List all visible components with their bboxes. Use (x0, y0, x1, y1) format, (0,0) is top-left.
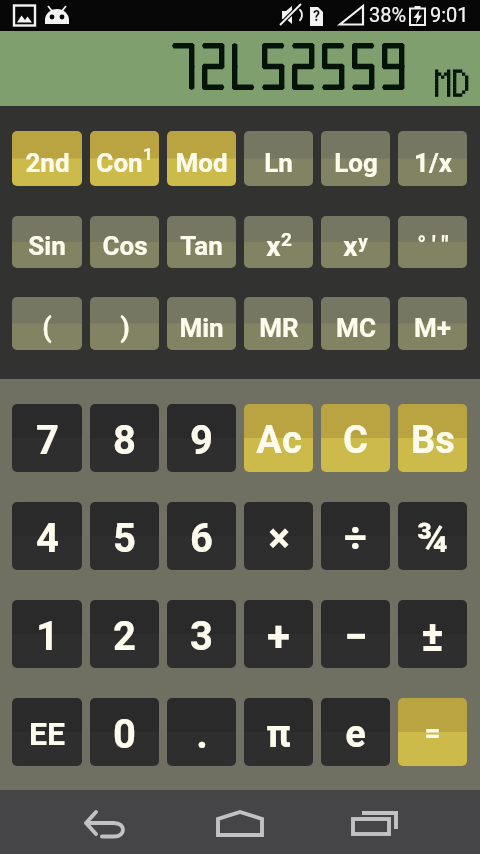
button[interactable]: ) (90, 297, 159, 350)
button[interactable]: 2nd (12, 131, 82, 186)
button[interactable]: Cos (90, 216, 159, 268)
button[interactable]: 1 (12, 600, 82, 668)
staticText: Bs (411, 418, 455, 463)
staticText: 5 (113, 515, 136, 562)
button[interactable]: 6 (167, 502, 236, 570)
staticText: × (268, 515, 290, 562)
button[interactable]: π (244, 698, 313, 766)
button[interactable]: x (321, 216, 390, 268)
button[interactable]: Ln (244, 131, 313, 186)
staticText: 0 (113, 711, 136, 758)
button[interactable]: 9 (167, 404, 236, 472)
button[interactable]: + (244, 600, 313, 668)
button[interactable]: − (321, 600, 390, 668)
staticText: Tan (180, 231, 223, 261)
staticText: C (343, 418, 368, 463)
staticText: = (424, 716, 441, 749)
staticText: 9 (190, 417, 213, 464)
button[interactable]: Log (321, 131, 390, 186)
staticText: 8 (113, 417, 136, 464)
button[interactable]: × (244, 502, 313, 570)
button[interactable]: ° ′ ″ (398, 216, 467, 268)
button[interactable]: 4 (12, 502, 82, 570)
button[interactable]: M+ (398, 297, 467, 350)
button[interactable]: Sin (12, 216, 82, 268)
button[interactable]: MR (244, 297, 313, 350)
staticText: ° ′ ″ (417, 232, 449, 259)
staticText: Ac (256, 418, 302, 463)
button[interactable]: Bs (398, 404, 467, 472)
staticText: ¾ (416, 515, 449, 562)
button[interactable]: Tan (167, 216, 236, 268)
button[interactable]: C (321, 404, 390, 472)
staticText: 6 (190, 515, 213, 562)
staticText: 2nd (25, 148, 70, 178)
button[interactable]: Recent apps (340, 790, 430, 854)
button[interactable]: 3 (167, 600, 236, 668)
staticText: ( (42, 312, 52, 344)
staticText: Ln (264, 148, 293, 178)
staticText: 2 (113, 613, 136, 660)
button[interactable]: 5 (90, 502, 159, 570)
button[interactable]: ÷ (321, 502, 390, 570)
staticText: x (266, 230, 281, 263)
staticText: Con (96, 148, 143, 178)
staticText: e (345, 712, 366, 757)
staticText: M+ (414, 313, 451, 343)
staticText: EE (29, 715, 65, 753)
staticText: π (266, 712, 291, 757)
button[interactable]: ( (12, 297, 82, 350)
staticText: 1 (36, 613, 59, 660)
staticText: 4 (36, 515, 59, 562)
button[interactable]: e (321, 698, 390, 766)
button[interactable]: ± (398, 600, 467, 668)
staticText: − (344, 612, 368, 661)
button[interactable]: = (398, 698, 467, 766)
staticText: ± (421, 612, 444, 661)
staticText: ) (120, 312, 130, 344)
button[interactable]: 1/x (398, 131, 467, 186)
staticText: 2 (281, 228, 292, 250)
staticText: 3 (190, 613, 213, 660)
button[interactable]: . (167, 698, 236, 766)
staticText: Min (179, 313, 224, 343)
staticText: MC (336, 313, 376, 343)
button[interactable]: Con (90, 131, 159, 186)
button[interactable]: 2 (90, 600, 159, 668)
staticText: + (267, 612, 290, 661)
staticText: MR (259, 313, 299, 343)
button[interactable]: Mod (167, 131, 236, 186)
button[interactable]: 8 (90, 404, 159, 472)
staticText: . (196, 711, 208, 758)
button[interactable]: 0 (90, 698, 159, 766)
staticText: 1/x (414, 148, 452, 178)
staticText: ? (313, 8, 320, 24)
button[interactable]: MC (321, 297, 390, 350)
staticText: Mod (175, 148, 228, 178)
button[interactable]: EE (12, 698, 82, 766)
staticText: y (358, 230, 368, 252)
staticText: 1 (143, 144, 153, 164)
staticText: Cos (102, 231, 148, 261)
button[interactable]: x (244, 216, 313, 268)
staticText: Log (334, 148, 378, 178)
staticText: 9:01 (430, 3, 469, 26)
button[interactable]: Back (62, 790, 152, 854)
staticText: ÷ (344, 515, 367, 562)
button[interactable]: ¾ (398, 502, 467, 570)
staticText: 7 (36, 417, 59, 464)
button[interactable]: Ac (244, 404, 313, 472)
button[interactable]: Min (167, 297, 236, 350)
button[interactable]: Home (195, 790, 285, 854)
staticText: Sin (28, 231, 66, 261)
button[interactable]: 7 (12, 404, 82, 472)
staticText: 38% (369, 3, 407, 26)
staticText: x (343, 230, 358, 263)
